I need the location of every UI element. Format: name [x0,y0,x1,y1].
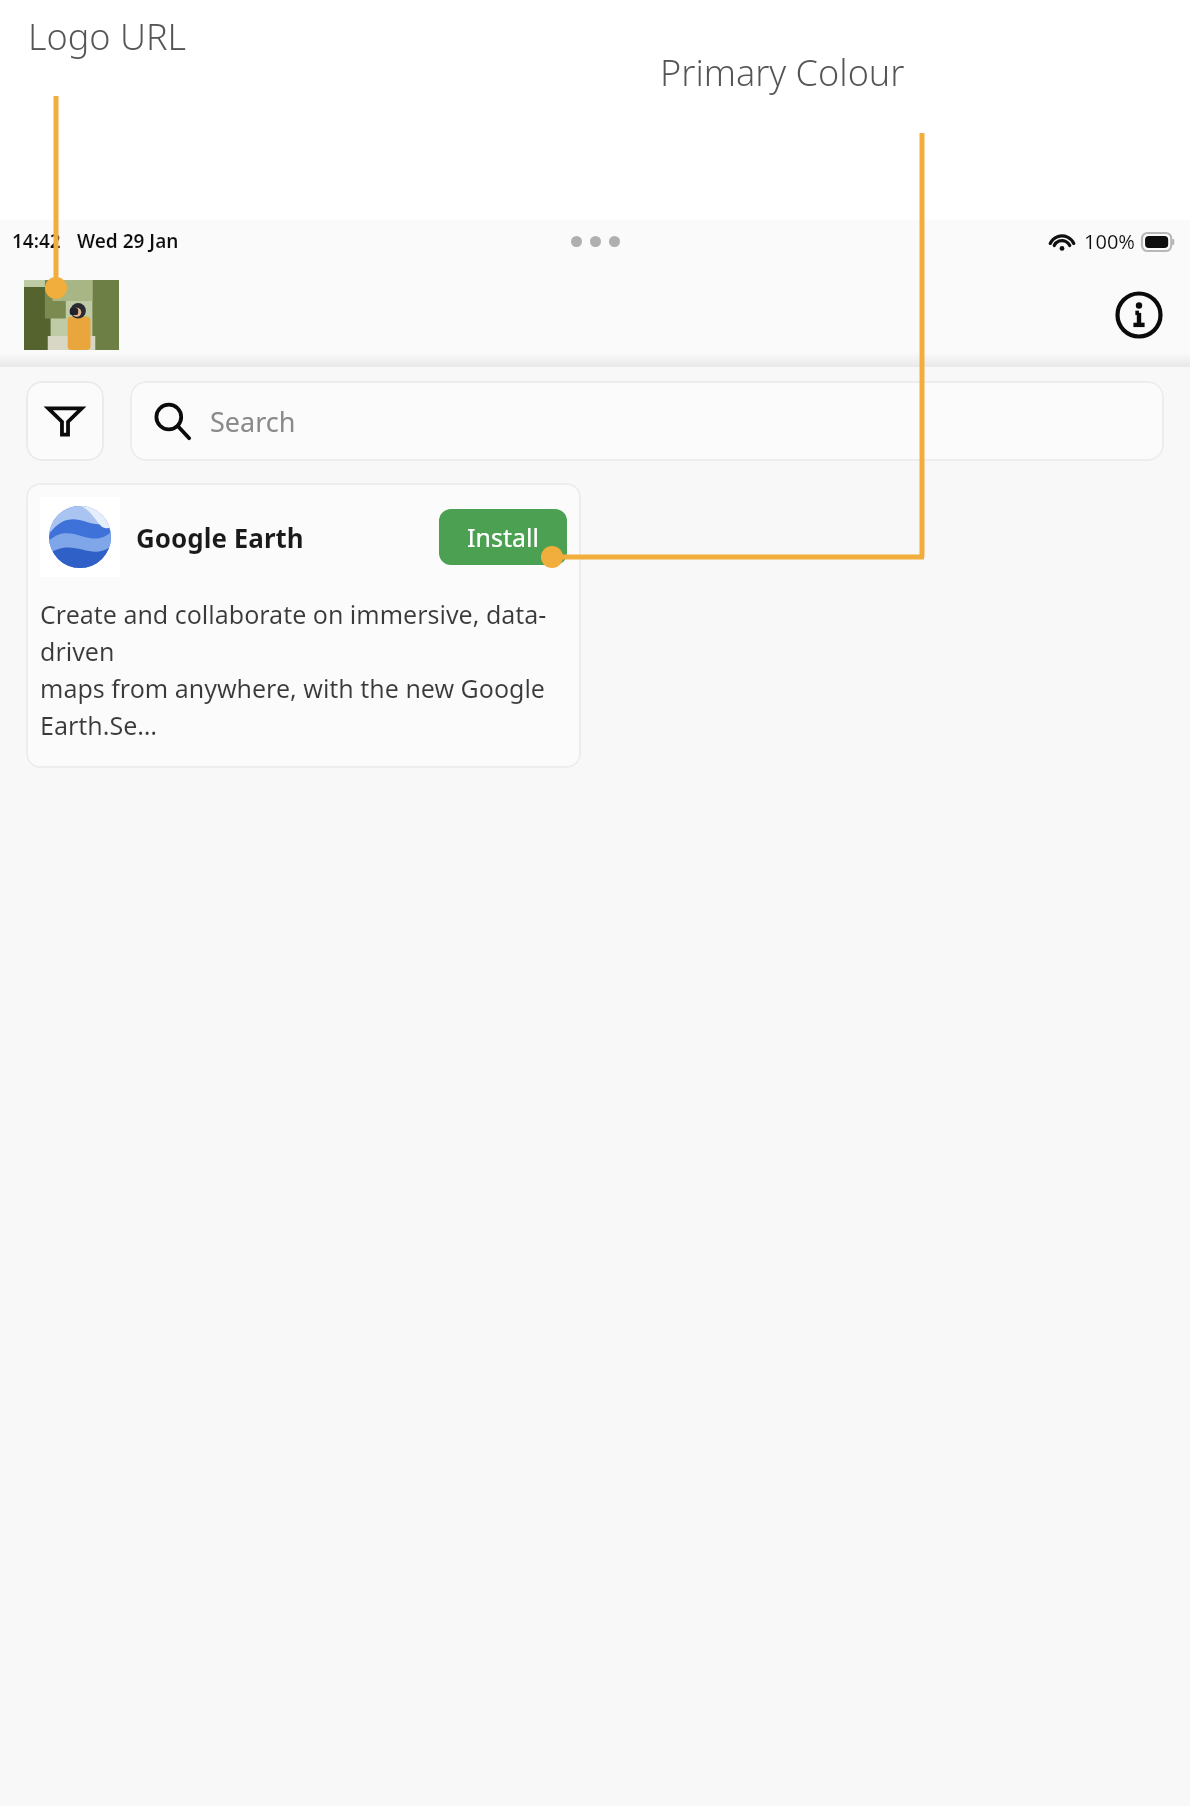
button[interactable]: Search [130,381,1164,461]
staticText: Install [467,520,539,554]
button[interactable]: Info [1108,284,1170,346]
staticText: Search [210,403,296,440]
staticText: 100% [1084,228,1135,255]
button[interactable]: Google Earth [26,483,581,768]
staticText: Primary Colour [660,48,905,97]
button[interactable]: Install [439,509,567,565]
button[interactable]: Filter [26,381,104,461]
staticText: Wed 29 Jan [77,228,179,254]
staticText: 14:42 [12,228,61,254]
staticText: Create and collaborate on immersive, dat… [40,597,567,742]
staticText: Google Earth [136,520,304,555]
button[interactable]: Logo [24,280,119,350]
staticText: Logo URL [28,12,187,61]
